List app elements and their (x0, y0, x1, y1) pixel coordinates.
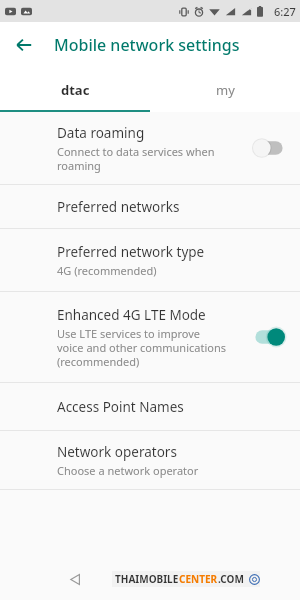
staticText: Connect to data services when roaming (57, 144, 215, 173)
staticText: .COM (218, 572, 244, 586)
staticText: Preferred networks (57, 198, 180, 216)
button[interactable]: dtac (0, 67, 150, 112)
button[interactable]: Preferred networks (0, 185, 300, 228)
button[interactable]: Home (140, 569, 160, 589)
button[interactable]: my (150, 67, 300, 112)
button[interactable]: Back (6, 27, 42, 63)
staticText: Mobile network settings (54, 34, 240, 56)
button[interactable]: Enhanced 4G LTE Mode (0, 292, 300, 382)
staticText: Choose a network operator (57, 463, 199, 478)
button[interactable]: Recents (222, 569, 242, 589)
staticText: Use LTE services to improve voice and ot… (57, 326, 226, 369)
staticText: my (216, 81, 235, 99)
button[interactable]: Toggle off (252, 137, 286, 159)
button[interactable]: Back (62, 566, 88, 592)
button[interactable]: Data roaming (0, 112, 300, 184)
staticText: Data roaming (57, 124, 145, 142)
staticText: Preferred network type (57, 243, 205, 261)
staticText: CENTER (179, 572, 218, 586)
staticText: Access Point Names (57, 398, 184, 416)
staticText: THAIMOBILE (115, 572, 179, 586)
button[interactable]: Preferred network type (0, 229, 300, 291)
button[interactable]: Access Point Names (0, 383, 300, 430)
button[interactable]: Toggle on (252, 326, 286, 348)
staticText: dtac (61, 81, 90, 99)
button[interactable]: Network operators (0, 431, 300, 489)
staticText: Enhanced 4G LTE Mode (57, 306, 206, 324)
staticText: 4G (recommended) (57, 263, 157, 278)
staticText: 6:27 (274, 4, 296, 19)
staticText: Network operators (57, 443, 177, 461)
